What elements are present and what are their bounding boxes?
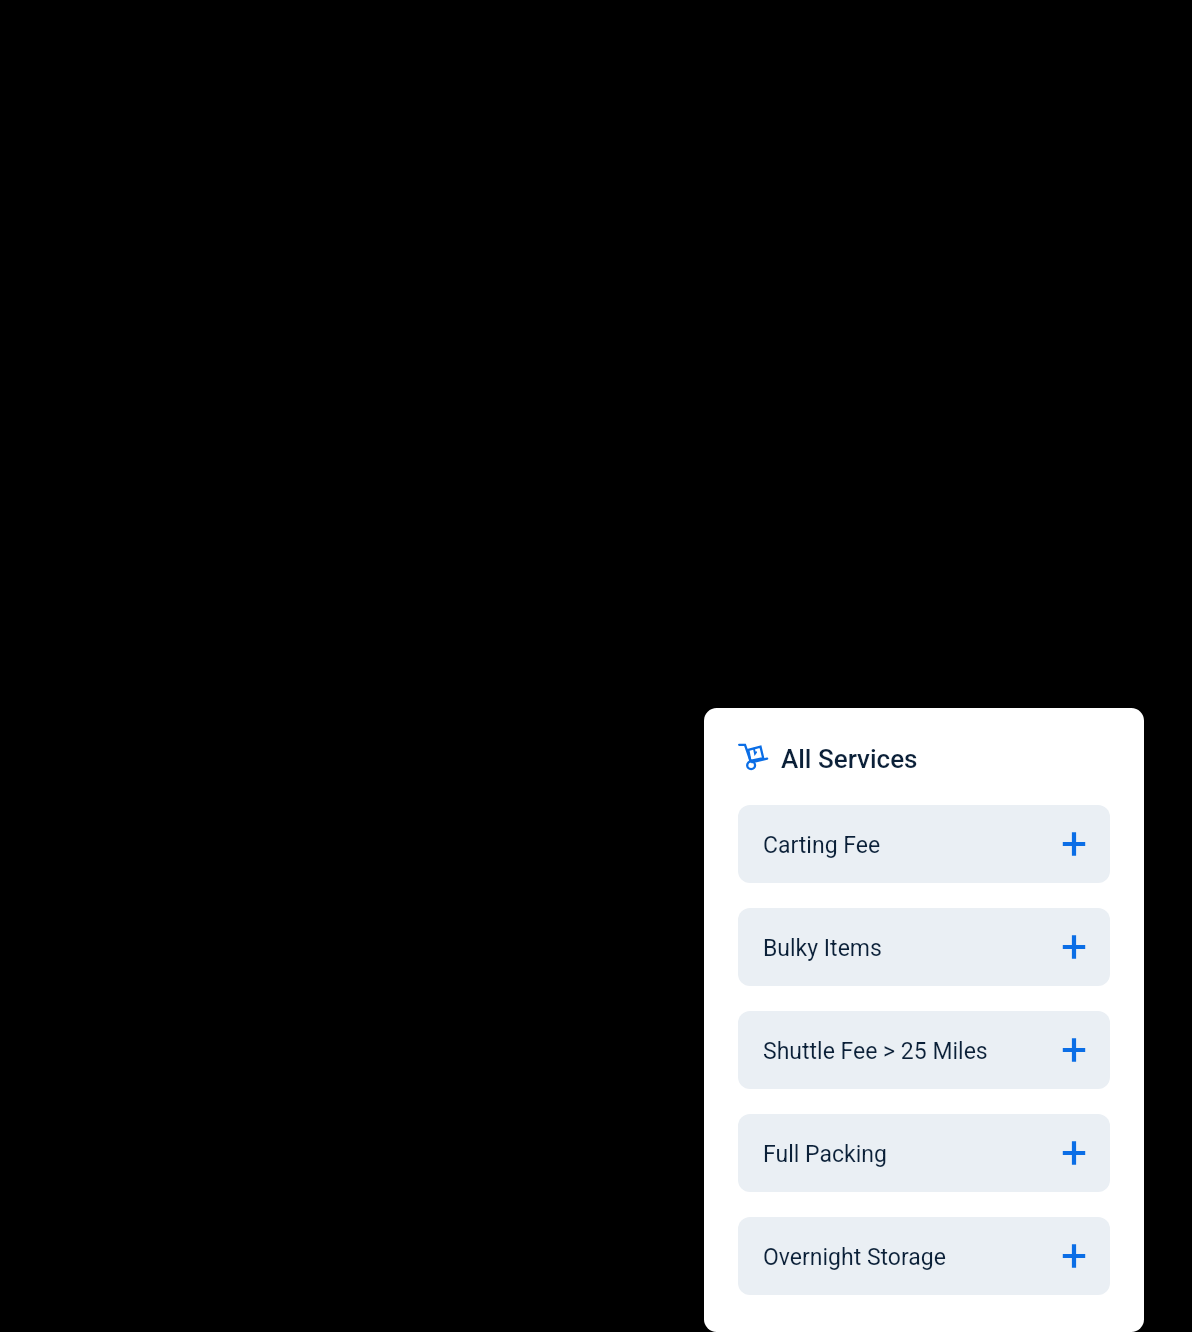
other: Services	[738, 743, 768, 773]
staticText: Shuttle Fee > 25 Miles	[763, 1038, 988, 1065]
button[interactable]: Add Full Packing	[1062, 1141, 1086, 1165]
staticText: Bulky Items	[763, 935, 882, 962]
staticText: Full Packing	[763, 1141, 887, 1168]
button[interactable]: Add Bulky Items	[1062, 935, 1086, 959]
button[interactable]: Shuttle Fee > 25 Miles	[738, 1011, 1110, 1089]
button[interactable]: Carting Fee	[738, 805, 1110, 883]
button[interactable]: Add Carting Fee	[1062, 832, 1086, 856]
button[interactable]: Overnight Storage	[738, 1217, 1110, 1295]
staticText: Overnight Storage	[763, 1244, 946, 1271]
staticText: All Services	[781, 744, 918, 774]
button[interactable]: Add Overnight Storage	[1062, 1244, 1086, 1268]
staticText: Carting Fee	[763, 832, 881, 859]
button[interactable]: Add Shuttle Fee > 25 Miles	[1062, 1038, 1086, 1062]
button[interactable]: Full Packing	[738, 1114, 1110, 1192]
button[interactable]: Bulky Items	[738, 908, 1110, 986]
